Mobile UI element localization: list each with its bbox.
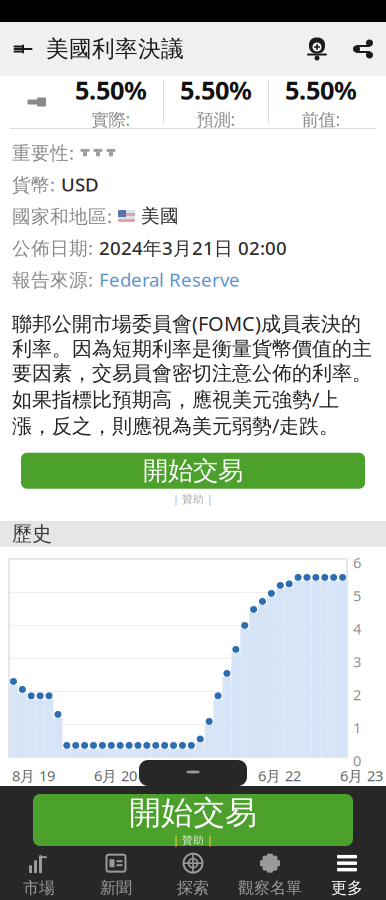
staticText: | 贊助 |	[173, 492, 213, 506]
staticText: 公佈日期:	[12, 235, 93, 260]
staticText: 實際:	[91, 108, 130, 131]
staticText: 貨幣:	[12, 172, 55, 197]
button[interactable]: 開始交易	[33, 794, 353, 846]
button[interactable]: 市場	[0, 850, 77, 900]
staticText: 6	[353, 553, 361, 572]
staticText: 新聞	[100, 878, 132, 898]
button[interactable]: 更多	[308, 850, 385, 900]
staticText: 6月 21	[176, 766, 219, 785]
staticText: 重要性:	[12, 140, 74, 165]
staticText: 前值:	[301, 108, 340, 131]
staticText: 5.50%	[75, 73, 147, 107]
staticText: 6月 20	[94, 766, 137, 785]
staticText: 美國	[141, 204, 179, 227]
staticText: 更多	[331, 878, 363, 898]
staticText: 6月 22	[258, 766, 301, 785]
staticText: 觀察名單	[238, 878, 302, 898]
staticText: 4	[353, 619, 361, 638]
staticText: 歷史	[12, 522, 52, 546]
staticText: 8月 19	[12, 766, 55, 785]
button[interactable]: 觀察名單	[231, 850, 308, 900]
staticText: 開始交易	[129, 793, 257, 833]
button[interactable]: 探索	[154, 850, 231, 900]
staticText: Federal Reserve	[99, 267, 240, 292]
button[interactable]: Back	[0, 22, 46, 76]
staticText: 5.50%	[180, 73, 252, 107]
staticText: 5	[353, 586, 361, 605]
staticText: 0	[353, 751, 361, 770]
staticText: 6月 23	[340, 766, 383, 785]
staticText: 2	[353, 685, 361, 704]
staticText: 5.50%	[285, 73, 357, 107]
button[interactable]: Federal Reserve	[99, 267, 240, 292]
staticText: 聯邦公開市場委員會(FOMC)成員表決的利率。因為短期利率是衡量貨幣價值的主要因…	[12, 310, 372, 439]
button[interactable]: 新聞	[77, 850, 154, 900]
staticText: 國家和地區:	[12, 204, 112, 228]
staticText: 市場	[23, 878, 55, 898]
button[interactable]: Alerts	[294, 22, 340, 76]
staticText: 探索	[177, 878, 209, 898]
button[interactable]: Share	[340, 22, 386, 76]
staticText: 開始交易	[143, 455, 243, 486]
staticText: 美國利率決議	[46, 35, 184, 63]
staticText: | 贊助 |	[173, 833, 213, 847]
staticText: 2024年3月21日 02:00	[99, 235, 287, 260]
staticText: 3	[353, 652, 361, 671]
staticText: 報告來源:	[12, 267, 93, 292]
staticText: 預測:	[196, 108, 235, 131]
staticText: USD	[61, 172, 99, 197]
staticText: 1	[353, 718, 361, 737]
button[interactable]: 開始交易	[21, 453, 365, 489]
